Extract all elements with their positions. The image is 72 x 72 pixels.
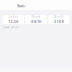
button[interactable]: Today bbox=[3, 15, 24, 24]
staticText: Week bbox=[32, 15, 41, 18]
button[interactable]: Week bbox=[25, 15, 47, 24]
staticText: Today bbox=[8, 15, 18, 18]
staticText: 88.1k bbox=[31, 19, 41, 24]
staticText: Month bbox=[54, 15, 64, 18]
staticText: 12.4k bbox=[8, 19, 18, 24]
staticText: Recent activity bbox=[3, 26, 19, 29]
button[interactable]: Month bbox=[48, 15, 69, 24]
staticText: 310k bbox=[54, 19, 64, 24]
staticText: Stats bbox=[17, 4, 25, 8]
